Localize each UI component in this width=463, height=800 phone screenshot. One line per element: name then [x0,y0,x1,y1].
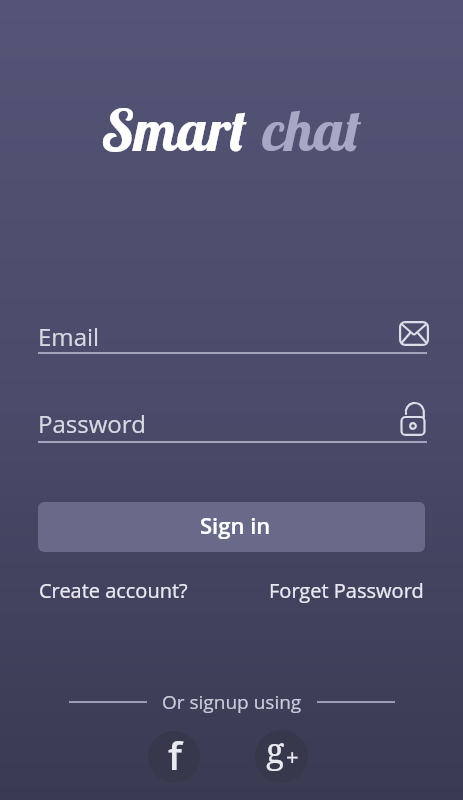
button[interactable]: Sign in [38,502,425,552]
button[interactable]: g [255,730,308,783]
staticText: g [266,730,285,773]
button[interactable]: Create account? [39,577,188,604]
staticText: Password [38,407,146,440]
button[interactable]: f [148,731,200,783]
staticText: Smart [103,93,246,166]
button[interactable]: Password [38,396,427,443]
staticText: Or signup using [162,689,302,715]
staticText: Email [38,320,100,353]
staticText: f [168,731,182,781]
staticText: Sign in [200,510,271,540]
button[interactable]: Email [38,316,427,354]
staticText: + [286,741,299,771]
button[interactable]: Forget Password [269,577,424,604]
staticText: chat [262,93,361,166]
